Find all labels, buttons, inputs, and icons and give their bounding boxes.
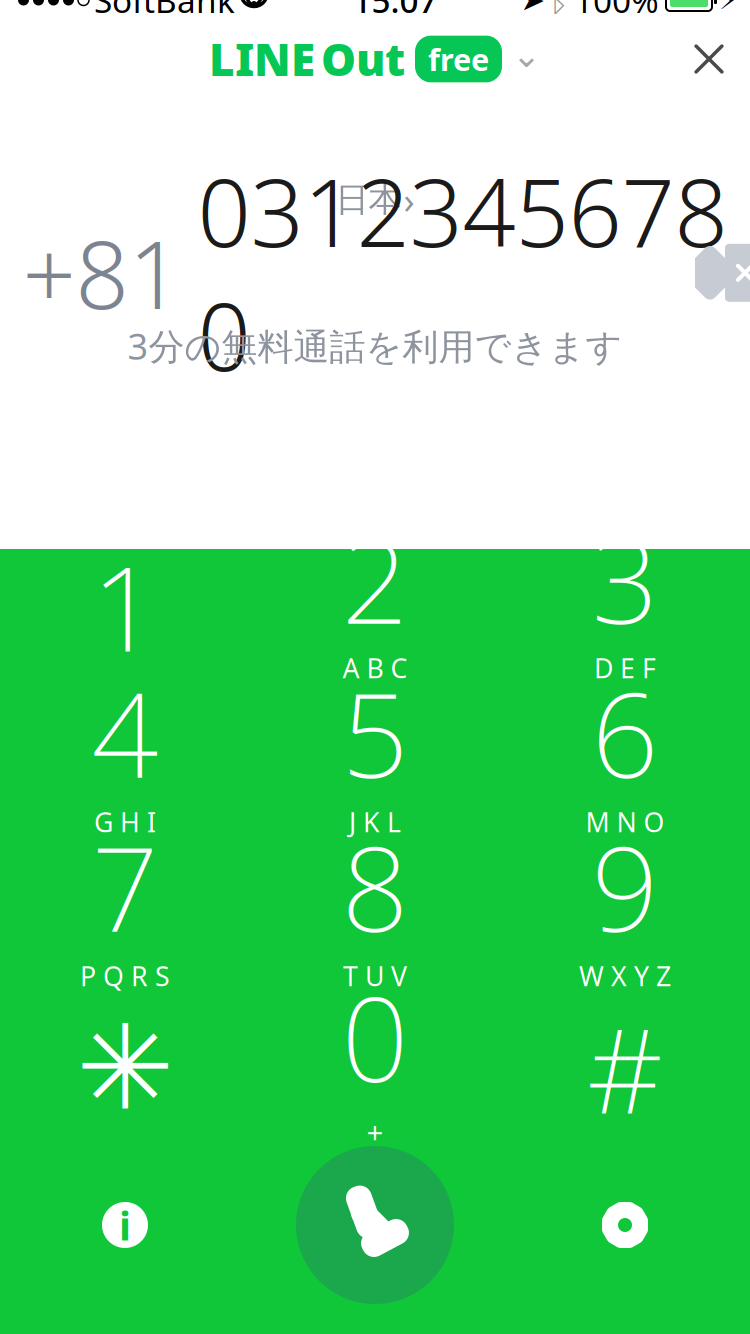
staticText: Out xyxy=(321,30,405,88)
staticText: 6 xyxy=(591,654,658,810)
button[interactable]: # xyxy=(500,991,750,1145)
button[interactable]: 6 xyxy=(500,683,750,837)
button[interactable]: 4 xyxy=(0,683,250,837)
staticText: 9 xyxy=(591,808,658,964)
staticText: 4 xyxy=(91,654,158,810)
staticText: G H I xyxy=(94,804,156,840)
button[interactable]: 5 xyxy=(250,683,500,837)
button[interactable]: 2 xyxy=(250,529,500,683)
staticText: 8 xyxy=(341,808,408,964)
button[interactable]: Delete xyxy=(690,242,750,304)
staticText: ᛒ xyxy=(548,0,569,17)
button[interactable]: ✳ xyxy=(0,991,250,1145)
button[interactable]: 3 xyxy=(500,529,750,683)
staticText: 7 xyxy=(91,808,158,964)
staticText: J K L xyxy=(349,804,401,840)
staticText: M N O xyxy=(585,804,664,840)
staticText: free xyxy=(428,39,489,79)
staticText: 3 xyxy=(591,500,658,656)
button[interactable]: 1 xyxy=(0,529,250,683)
staticText: 03123456780 xyxy=(197,149,727,397)
staticText: › xyxy=(403,176,414,224)
button[interactable]: Settings xyxy=(500,1145,750,1305)
staticText: SoftBank xyxy=(94,0,235,22)
button[interactable]: 7 xyxy=(0,837,250,991)
staticText: 日本 xyxy=(335,179,401,220)
button[interactable]: LINE xyxy=(203,28,547,90)
button[interactable]: 0 xyxy=(250,991,500,1145)
staticText: # xyxy=(587,990,663,1146)
staticText: ➤ xyxy=(520,0,545,17)
staticText: i xyxy=(119,1198,131,1251)
staticText: ⚡︎ xyxy=(719,0,738,15)
button[interactable]: 日本 xyxy=(323,172,426,228)
staticText: D E F xyxy=(594,650,656,686)
staticText: W X Y Z xyxy=(579,958,671,994)
button[interactable]: 9 xyxy=(500,837,750,991)
staticText: 1 xyxy=(91,528,158,684)
staticText: ✳ xyxy=(76,1001,174,1135)
staticText: 3分の無料通話を利用できます xyxy=(127,322,622,370)
staticText: 0 xyxy=(341,959,408,1114)
staticText: LINE xyxy=(209,30,315,88)
staticText: T U V xyxy=(343,958,407,994)
staticText: 5 xyxy=(341,654,408,810)
staticText: +81 xyxy=(22,211,181,335)
staticText: 15:07 xyxy=(352,0,437,22)
staticText: + xyxy=(366,1112,383,1151)
staticText: ⌄ xyxy=(512,35,541,75)
staticText: 100% xyxy=(574,0,659,22)
button[interactable]: Close xyxy=(672,22,746,96)
staticText: 2 xyxy=(341,500,408,656)
button[interactable]: Call xyxy=(250,1145,500,1305)
button[interactable]: Information xyxy=(0,1145,250,1305)
button[interactable]: 8 xyxy=(250,837,500,991)
staticText: A B C xyxy=(342,650,407,686)
staticText: P Q R S xyxy=(80,958,170,994)
